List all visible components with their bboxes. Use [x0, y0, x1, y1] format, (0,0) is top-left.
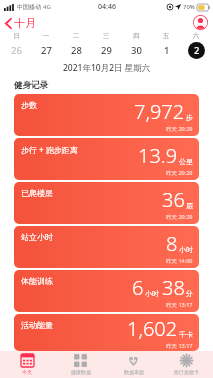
staticText: 小时: [179, 245, 193, 254]
staticText: 三: [91, 32, 121, 40]
staticText: 昨天 20:29: [166, 125, 193, 133]
staticText: 36: [162, 186, 185, 213]
button[interactable]: 活动能量: [14, 314, 199, 351]
staticText: 四: [121, 32, 151, 40]
button[interactable]: 2: [181, 42, 211, 59]
staticText: 8: [166, 230, 178, 257]
staticText: 昨天 20:29: [166, 213, 193, 221]
staticText: 30: [131, 44, 142, 57]
button[interactable]: Profile: [193, 15, 208, 30]
staticText: 已爬楼层: [21, 188, 53, 198]
button[interactable]: 29: [91, 42, 121, 59]
staticText: 分: [186, 289, 193, 298]
staticText: 今天: [22, 369, 32, 375]
staticText: 层: [186, 201, 193, 210]
button[interactable]: 27: [31, 42, 61, 59]
staticText: 站立小时: [21, 232, 53, 242]
staticText: 一: [31, 32, 61, 40]
button[interactable]: 今天: [0, 351, 54, 378]
staticText: 38: [162, 274, 185, 301]
other: 医疗急救卡: [180, 354, 193, 367]
staticText: 千卡: [179, 330, 193, 339]
staticText: 六: [181, 32, 211, 40]
staticText: 28: [71, 44, 82, 57]
staticText: 昨天 20:29: [166, 169, 193, 177]
button[interactable]: 1: [151, 42, 181, 59]
staticText: 小时: [145, 289, 159, 298]
staticText: 昨天 13:17: [166, 342, 193, 350]
button[interactable]: 健康数据: [54, 351, 107, 378]
button[interactable]: 体能训练: [14, 270, 199, 312]
staticText: 27: [41, 44, 52, 57]
staticText: 13.9: [138, 142, 178, 169]
staticText: 步: [186, 113, 193, 122]
button[interactable]: 已爬楼层: [14, 182, 199, 224]
button[interactable]: 28: [61, 42, 91, 59]
staticText: 7,972: [134, 98, 185, 125]
staticText: 医疗急救卡: [174, 369, 199, 375]
staticText: 04:46: [98, 2, 116, 12]
staticText: 29: [101, 44, 112, 57]
staticText: 二: [61, 32, 91, 40]
staticText: 体能训练: [21, 276, 53, 286]
button[interactable]: 十月: [0, 14, 42, 32]
staticText: 昨天 13:17: [166, 301, 193, 309]
staticText: 26: [11, 44, 22, 57]
other: 数据来源: [127, 354, 140, 367]
staticText: 1: [164, 44, 170, 57]
button[interactable]: 26: [2, 42, 31, 59]
button[interactable]: 站立小时: [14, 226, 199, 268]
button[interactable]: 步行 + 跑步距离: [14, 138, 199, 180]
staticText: 中国移动: [17, 3, 41, 11]
staticText: 日: [2, 32, 31, 40]
staticText: 70%: [183, 3, 195, 11]
button[interactable]: 步数: [14, 94, 199, 136]
button[interactable]: 数据来源: [107, 351, 160, 378]
staticText: 数据来源: [124, 369, 144, 375]
staticText: 4G: [43, 3, 51, 11]
staticText: 步行 + 跑步距离: [21, 144, 78, 155]
staticText: 健身记录: [14, 80, 48, 91]
other: 今天: [21, 354, 34, 367]
button[interactable]: 医疗急救卡: [160, 351, 213, 378]
staticText: 五: [151, 32, 181, 40]
staticText: 昨天 14:00: [166, 257, 193, 265]
staticText: 1,602: [127, 315, 178, 342]
staticText: 步数: [21, 100, 37, 110]
staticText: 2021年10月2日 星期六: [63, 62, 151, 74]
other: 健康数据: [74, 354, 87, 367]
staticText: 活动能量: [21, 320, 53, 330]
staticText: 6: [132, 274, 144, 301]
staticText: 2: [194, 44, 200, 57]
staticText: 健康数据: [71, 369, 91, 375]
staticText: 十月: [14, 16, 36, 30]
button[interactable]: 30: [121, 42, 151, 59]
staticText: 公里: [179, 157, 193, 166]
